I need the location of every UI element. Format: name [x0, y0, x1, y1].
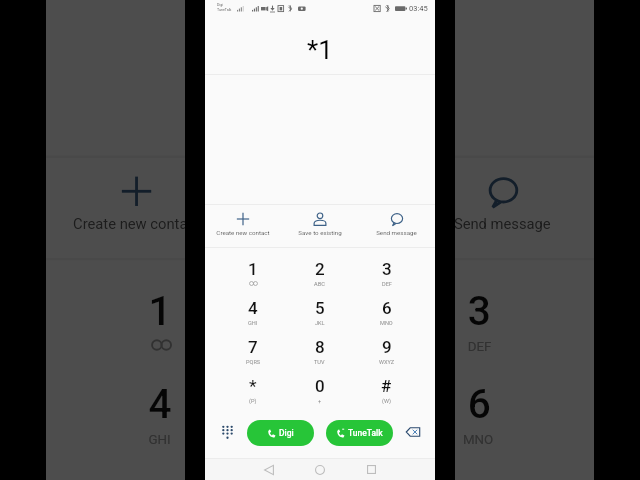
button[interactable]: Delete: [401, 420, 424, 443]
staticText: Create new contact: [216, 229, 270, 236]
staticText: Send message: [453, 215, 551, 232]
button[interactable]: 1: [220, 248, 286, 287]
staticText: +: [318, 398, 322, 404]
staticText: TuneTalk: [348, 428, 383, 438]
button[interactable]: 1: [82, 260, 239, 353]
staticText: GHI: [248, 320, 258, 326]
button[interactable]: Send message: [358, 205, 435, 247]
staticText: DEF: [382, 281, 392, 287]
button[interactable]: Save to existing: [227, 158, 411, 258]
button[interactable]: 3: [353, 248, 420, 287]
staticText: Create new contact: [72, 215, 201, 232]
staticText: 8: [308, 472, 332, 480]
staticText: 3: [382, 259, 392, 279]
button[interactable]: 0: [286, 365, 353, 404]
staticText: 5: [315, 298, 325, 318]
button[interactable]: 8: [239, 446, 399, 480]
button[interactable]: Digi: [247, 420, 314, 446]
staticText: (P): [249, 398, 257, 404]
button[interactable]: 7: [82, 446, 239, 480]
button[interactable]: 9: [399, 446, 558, 480]
staticText: WXYZ: [379, 359, 395, 365]
button[interactable]: Create new contact: [46, 158, 227, 258]
button[interactable]: 6: [353, 287, 420, 326]
staticText: ABC: [306, 339, 332, 353]
button[interactable]: Home: [309, 459, 331, 480]
staticText: 7: [248, 337, 258, 357]
staticText: *: [249, 376, 257, 396]
button[interactable]: Create new contact: [205, 205, 281, 247]
staticText: GHI: [148, 432, 172, 446]
staticText: MNO: [380, 320, 393, 326]
staticText: 1: [148, 287, 172, 334]
staticText: TUV: [314, 359, 325, 365]
staticText: 3: [468, 287, 491, 334]
staticText: 2: [308, 287, 332, 334]
staticText: Save to existing: [268, 215, 372, 232]
staticText: 9: [382, 337, 392, 357]
button[interactable]: 4: [220, 287, 286, 326]
button[interactable]: Save to existing: [281, 205, 358, 247]
button[interactable]: 8: [286, 326, 353, 365]
staticText: 2: [315, 259, 325, 279]
button[interactable]: Back: [258, 459, 280, 480]
button[interactable]: 9: [353, 326, 420, 365]
button[interactable]: 6: [399, 353, 558, 446]
staticText: DEF: [468, 339, 491, 353]
button[interactable]: TuneTalk: [326, 420, 393, 446]
button[interactable]: Send message: [410, 158, 594, 258]
staticText: 6: [468, 379, 491, 427]
staticText: Digi: [279, 428, 294, 438]
staticText: *1: [307, 35, 333, 65]
button[interactable]: Recents: [360, 459, 382, 480]
staticText: PQRS: [246, 359, 261, 365]
button[interactable]: 3: [399, 260, 558, 353]
staticText: 4: [248, 298, 258, 318]
button[interactable]: 4: [82, 353, 239, 446]
button[interactable]: 5: [286, 287, 353, 326]
staticText: 5: [308, 379, 332, 427]
staticText: ABC: [314, 281, 325, 287]
staticText: 8: [315, 337, 325, 357]
staticText: Save to existing: [298, 229, 342, 236]
staticText: 0: [315, 376, 325, 396]
staticText: (W): [382, 398, 391, 404]
staticText: 03:45: [409, 4, 428, 13]
staticText: 1: [248, 259, 258, 279]
button[interactable]: 5: [239, 353, 399, 446]
staticText: Send message: [376, 229, 417, 236]
staticText: Digi TuneTalk: [217, 3, 232, 12]
button[interactable]: #: [353, 365, 420, 404]
staticText: MNO: [463, 432, 494, 446]
staticText: 4: [148, 379, 172, 427]
button[interactable]: 2: [286, 248, 353, 287]
staticText: 6: [382, 298, 392, 318]
staticText: JKL: [308, 432, 332, 446]
staticText: #: [381, 376, 392, 396]
button[interactable]: 2: [239, 260, 399, 353]
button[interactable]: Keypad: [216, 420, 239, 443]
button[interactable]: *: [220, 365, 286, 404]
button[interactable]: 7: [220, 326, 286, 365]
staticText: JKL: [315, 320, 325, 326]
